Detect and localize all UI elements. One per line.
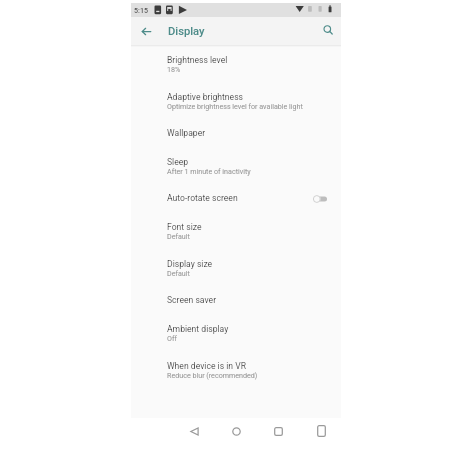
staticText: Adaptive brightness: [167, 92, 244, 102]
button[interactable]: Font size: [131, 213, 341, 250]
button[interactable]: Screen saver: [131, 287, 341, 315]
button[interactable]: Navigate up: [138, 23, 155, 40]
button[interactable]: Auto-rotate screen toggle: [309, 192, 329, 206]
staticText: Sleep: [167, 157, 189, 167]
staticText: When device is in VR: [167, 361, 246, 371]
staticText: Wallpaper: [167, 128, 206, 138]
staticText: Brightness level: [167, 55, 228, 65]
button[interactable]: Rotate screen: [312, 422, 330, 440]
button[interactable]: Back: [185, 422, 203, 440]
staticText: Reduce blur (recommended): [167, 371, 258, 379]
staticText: Display: [168, 25, 205, 38]
button[interactable]: Sleep: [131, 148, 341, 185]
button[interactable]: Search: [320, 22, 337, 39]
button[interactable]: Adaptive brightness: [131, 83, 341, 120]
staticText: Optimize brightness level for available …: [167, 102, 303, 110]
staticText: Default: [167, 269, 190, 277]
staticText: Screen saver: [167, 295, 217, 305]
staticText: Font size: [167, 222, 202, 232]
staticText: Default: [167, 232, 190, 240]
staticText: 5:15: [134, 6, 148, 14]
staticText: Auto-rotate screen: [167, 193, 238, 203]
button[interactable]: Ambient display: [131, 315, 341, 352]
staticText: After 1 minute of inactivity: [167, 167, 251, 175]
staticText: Ambient display: [167, 324, 229, 334]
staticText: 18%: [167, 65, 181, 73]
button[interactable]: Recent apps: [269, 422, 287, 440]
button[interactable]: Auto-rotate screen: [131, 185, 341, 213]
button[interactable]: Wallpaper: [131, 120, 341, 148]
button[interactable]: When device is in VR: [131, 352, 341, 389]
staticText: Off: [167, 334, 177, 342]
button[interactable]: Display size: [131, 250, 341, 287]
staticText: Display size: [167, 259, 213, 269]
button[interactable]: Brightness level: [131, 46, 341, 83]
button[interactable]: Home: [227, 422, 245, 440]
